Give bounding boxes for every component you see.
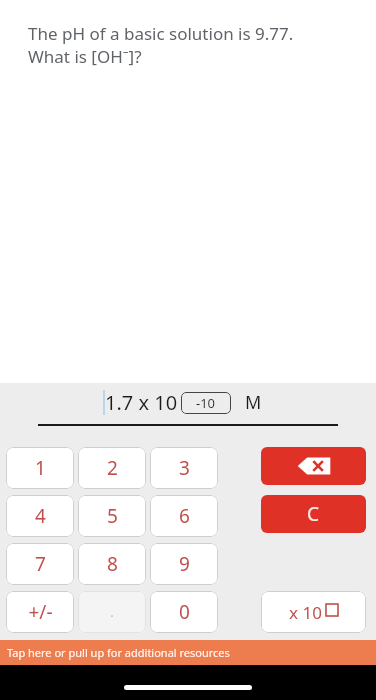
staticText: x 10 [289,601,322,624]
staticText: 5 [107,503,118,529]
staticText: Tap here or pull up for additional resou… [7,645,230,660]
button[interactable]: 2 [78,447,146,489]
button[interactable]: Backspace [261,447,366,485]
button[interactable]: 3 [150,447,218,489]
staticText: 1 [35,455,46,481]
button[interactable]: . [78,591,146,633]
staticText: 6 [179,503,190,529]
button[interactable]: -10 [181,392,231,414]
button[interactable]: 1 [6,447,74,489]
button[interactable]: x 10 [261,591,366,633]
staticText: M [245,390,262,415]
button[interactable]: 0 [150,591,218,633]
staticText: 7 [35,551,46,577]
staticText: . [110,603,114,621]
button[interactable]: 9 [150,543,218,585]
button[interactable]: +/- [6,591,74,633]
staticText: -10 [196,394,216,412]
staticText: 1.7 x 10 [105,389,178,416]
button[interactable]: 5 [78,495,146,537]
staticText: C [307,501,320,527]
button[interactable]: 8 [78,543,146,585]
staticText: +/- [28,599,53,625]
button[interactable]: C [261,495,366,533]
button[interactable]: Tap here or pull up for additional resou… [0,640,376,665]
staticText: 8 [107,551,118,577]
staticText: What is [OH⁻]? [28,45,142,68]
button[interactable]: 4 [6,495,74,537]
staticText: 9 [179,551,190,577]
staticText: 4 [35,503,46,529]
button[interactable]: 6 [150,495,218,537]
staticText: 3 [179,455,190,481]
staticText: 0 [179,599,190,625]
staticText: 2 [107,455,118,481]
button[interactable]: 7 [6,543,74,585]
staticText: The pH of a basic solution is 9.77. [28,22,294,45]
